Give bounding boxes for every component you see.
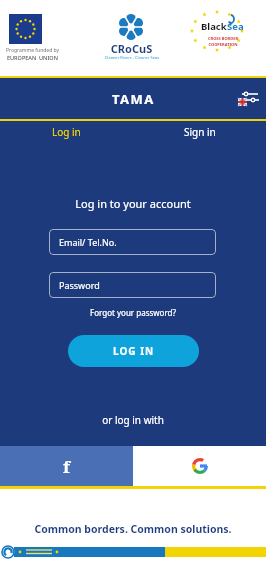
button[interactable]: Email/ Tel.No.	[49, 229, 216, 255]
staticText: Common borders. Common solutions.	[0, 522, 266, 536]
staticText: LOG IN	[113, 344, 155, 358]
button[interactable]: Forgot your password?	[0, 307, 266, 318]
staticText: EUROPEAN UNION	[7, 54, 58, 61]
staticText: Password	[59, 279, 100, 291]
staticText: Sea	[227, 20, 244, 33]
staticText: Log in to your account	[0, 196, 266, 211]
staticText: Black	[201, 20, 227, 33]
button[interactable]: Sign in	[133, 121, 266, 143]
button[interactable]: Log in	[0, 121, 133, 143]
staticText: Sign in	[184, 125, 216, 139]
staticText: Programme funded by	[6, 47, 60, 54]
staticText: Email/ Tel.No.	[59, 236, 117, 248]
staticText: f	[63, 455, 70, 478]
button[interactable]: f	[0, 446, 133, 486]
button[interactable]	[133, 446, 266, 486]
staticText: Log in	[52, 125, 81, 139]
staticText: TAMA	[112, 90, 155, 108]
staticText: Cleaner Rivers - Cleaner Seas	[100, 55, 164, 60]
button[interactable]: LOG IN	[68, 335, 199, 367]
button[interactable]	[238, 88, 260, 110]
staticText: CRoCuS	[104, 41, 159, 56]
staticText: or log in with	[0, 413, 266, 427]
button[interactable]: Password	[49, 272, 216, 298]
staticText: CROSS BORDER	[202, 36, 244, 41]
staticText: COOPERATION	[202, 42, 244, 47]
